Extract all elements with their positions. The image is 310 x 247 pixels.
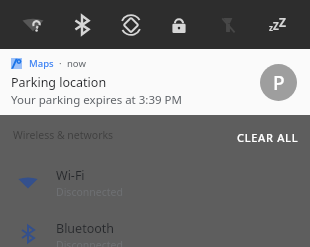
staticText: Wireless & networks — [13, 128, 114, 142]
button[interactable]: Wi-Fi — [13, 5, 53, 45]
button[interactable]: CLEAR ALL — [233, 127, 303, 148]
button[interactable]: Maps — [0, 49, 310, 115]
staticText: CLEAR ALL — [237, 130, 299, 145]
staticText: Maps — [29, 57, 54, 70]
staticText: Z — [279, 14, 286, 30]
staticText: Parking location — [11, 74, 107, 91]
staticText: Your parking expires at 3:39 PM — [11, 92, 182, 108]
button[interactable]: Bluetooth — [62, 5, 102, 45]
staticText: Disconnected — [56, 185, 123, 199]
button[interactable]: Screen lock — [159, 5, 199, 45]
staticText: z — [269, 22, 273, 33]
button[interactable]: Bluetooth — [0, 220, 310, 247]
staticText: Wi-Fi — [56, 167, 85, 184]
staticText: · — [59, 57, 62, 70]
staticText: Disconnected — [56, 238, 123, 247]
staticText: P — [273, 70, 285, 96]
staticText: Bluetooth — [56, 220, 115, 237]
button[interactable]: Wi-Fi — [0, 162, 310, 204]
staticText: Z — [273, 19, 279, 33]
staticText: now — [67, 57, 86, 70]
button[interactable]: Do not disturb — [257, 5, 297, 45]
button[interactable]: Flashlight — [208, 5, 248, 45]
button[interactable]: Auto rotate — [111, 5, 151, 45]
